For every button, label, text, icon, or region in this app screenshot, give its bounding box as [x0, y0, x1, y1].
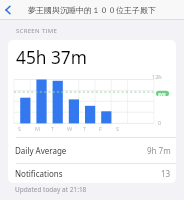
staticText: SCREEN TIME: [16, 27, 58, 35]
staticText: W: [67, 125, 73, 132]
staticText: 45h 37m: [16, 46, 87, 70]
staticText: 9h 7m: [147, 145, 171, 156]
staticText: avg: [158, 91, 166, 97]
staticText: 13: [161, 168, 171, 179]
staticText: T: [51, 125, 55, 132]
staticText: Notifications: [15, 168, 63, 179]
staticText: Daily Average: [15, 145, 67, 156]
staticText: S: [116, 125, 120, 132]
staticText: 12h: [152, 73, 162, 80]
staticText: M: [35, 125, 40, 132]
button[interactable]: Notifications: [8, 164, 176, 183]
button[interactable]: Back: [0, 2, 16, 18]
staticText: Updated today at 21:18: [15, 185, 87, 194]
staticText: S: [18, 125, 22, 132]
staticText: 夢王國與沉睡中的１００位王子殿下: [28, 5, 156, 15]
staticText: T: [83, 125, 87, 132]
staticText: F: [99, 125, 102, 132]
button[interactable]: Daily Average: [8, 138, 176, 163]
staticText: 0: [158, 119, 162, 126]
